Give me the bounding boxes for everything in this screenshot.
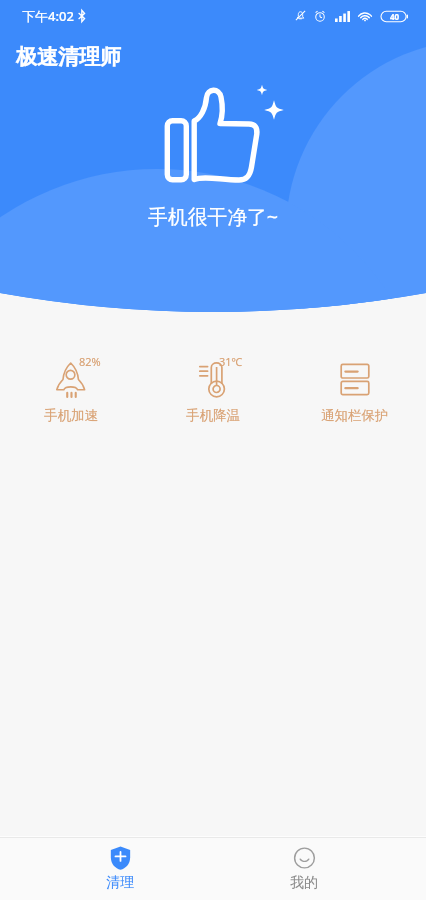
staticText: 82% [79, 354, 101, 369]
staticText: 我的 [290, 874, 318, 892]
staticText: 31℃ [219, 354, 243, 369]
button[interactable]: 清理 [52, 838, 188, 900]
button[interactable]: 通知栏保护 [284, 355, 426, 424]
staticText: 手机降温 [186, 407, 240, 424]
button[interactable]: 82% [0, 355, 142, 424]
staticText: 通知栏保护 [321, 407, 389, 424]
staticText: 40 [390, 11, 400, 22]
staticText: 下午4:02 [22, 7, 74, 25]
button[interactable]: 我的 [236, 838, 372, 900]
staticText: 极速清理师 [16, 44, 121, 70]
staticText: 清理 [106, 874, 134, 892]
staticText: 手机加速 [44, 407, 98, 424]
button[interactable]: 31℃ [142, 355, 284, 424]
staticText: 手机很干净了~ [0, 203, 426, 230]
